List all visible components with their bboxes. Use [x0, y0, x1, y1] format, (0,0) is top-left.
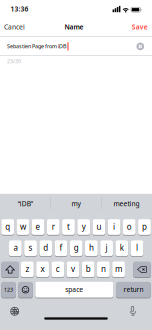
button[interactable]: Emoji — [18, 281, 33, 298]
button[interactable]: x — [36, 261, 49, 278]
button[interactable]: y — [77, 219, 90, 235]
button[interactable]: u — [92, 219, 105, 235]
staticText: 23/30 — [7, 58, 21, 65]
button[interactable]: i — [108, 219, 120, 235]
staticText: q — [5, 221, 10, 232]
staticText: y — [82, 221, 86, 232]
staticText: s — [29, 242, 33, 253]
staticText: 123 — [4, 286, 13, 293]
button[interactable]: e — [32, 219, 44, 235]
button[interactable]: t — [62, 219, 75, 235]
staticText: Cancel — [4, 22, 25, 31]
staticText: c — [56, 263, 60, 274]
staticText: t — [67, 221, 70, 232]
button[interactable]: Delete — [133, 261, 151, 278]
button[interactable]: Save — [130, 20, 150, 33]
staticText: return — [123, 285, 143, 294]
button[interactable]: “iDB” — [1, 195, 50, 213]
button[interactable]: r — [47, 219, 60, 235]
staticText: m — [115, 263, 122, 274]
button[interactable]: Shift — [1, 261, 19, 278]
button[interactable]: q — [1, 219, 14, 235]
staticText: 13:36 — [10, 5, 28, 13]
staticText: f — [59, 242, 62, 253]
staticText: k — [120, 242, 124, 253]
button[interactable]: f — [55, 240, 67, 257]
button[interactable]: Cancel — [2, 20, 27, 33]
button[interactable]: m — [112, 261, 125, 278]
staticText: h — [89, 242, 94, 253]
staticText: r — [52, 221, 55, 232]
staticText: p — [142, 221, 147, 232]
button[interactable]: my — [51, 195, 100, 213]
staticText: w — [20, 221, 26, 232]
button[interactable]: j — [100, 240, 113, 257]
button[interactable]: w — [16, 219, 29, 235]
button[interactable]: 123 — [1, 281, 16, 298]
button[interactable]: z — [21, 261, 34, 278]
staticText: my — [71, 199, 80, 208]
button[interactable]: b — [82, 261, 95, 278]
staticText: x — [41, 263, 45, 274]
button[interactable]: k — [115, 240, 128, 257]
staticText: Sebastien Page from iDB — [7, 43, 66, 50]
button[interactable]: c — [51, 261, 64, 278]
button[interactable]: s — [24, 240, 37, 257]
button[interactable]: space — [35, 281, 113, 298]
staticText: b — [86, 263, 91, 274]
staticText: i — [113, 221, 115, 232]
staticText: space — [65, 285, 83, 294]
button[interactable]: Dictation — [127, 305, 139, 317]
staticText: a — [13, 242, 17, 253]
button[interactable]: Clear text — [136, 42, 145, 51]
staticText: meeting — [114, 199, 140, 208]
staticText: o — [127, 221, 132, 232]
button[interactable]: v — [67, 261, 79, 278]
button[interactable]: Next keyboard — [9, 305, 21, 317]
staticText: “iDB” — [18, 199, 33, 208]
button[interactable]: g — [70, 240, 83, 257]
button[interactable]: d — [39, 240, 52, 257]
staticText: n — [101, 263, 106, 274]
staticText: u — [96, 221, 101, 232]
staticText: v — [71, 263, 75, 274]
staticText: j — [106, 242, 108, 253]
staticText: Save — [132, 22, 148, 31]
staticText: l — [136, 242, 138, 253]
staticText: Name — [64, 22, 83, 31]
button[interactable]: h — [85, 240, 98, 257]
button[interactable]: n — [97, 261, 110, 278]
button[interactable]: a — [9, 240, 22, 257]
staticText: g — [74, 242, 79, 253]
button[interactable]: p — [138, 219, 151, 235]
button[interactable]: meeting — [102, 195, 151, 213]
staticText: d — [43, 242, 48, 253]
staticText: z — [25, 263, 29, 274]
button[interactable]: l — [131, 240, 143, 257]
button[interactable]: return — [116, 281, 151, 298]
staticText: e — [36, 221, 41, 232]
button[interactable]: o — [123, 219, 136, 235]
